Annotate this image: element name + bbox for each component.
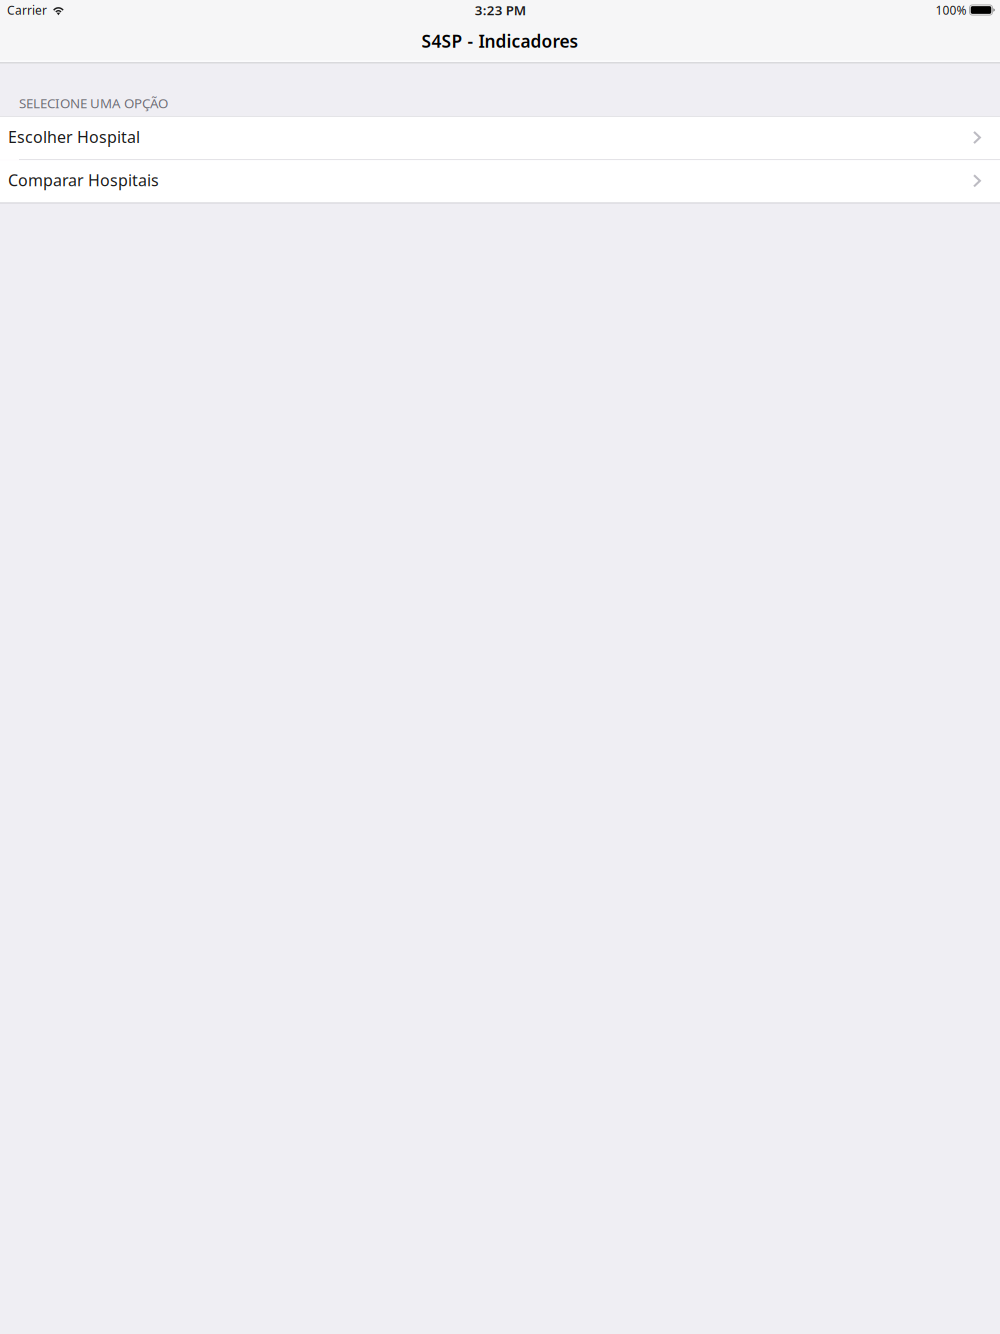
staticText: Carrier: [7, 2, 47, 18]
staticText: SELECIONE UMA OPÇÃO: [19, 94, 168, 112]
staticText: 3:23 PM: [475, 1, 526, 19]
staticText: 100%: [935, 2, 966, 18]
staticText: Comparar Hospitais: [8, 169, 159, 191]
staticText: S4SP - Indicadores: [421, 29, 578, 52]
button[interactable]: Escolher Hospital: [0, 117, 1000, 159]
button[interactable]: Comparar Hospitais: [0, 160, 1000, 202]
staticText: Escolher Hospital: [8, 126, 140, 147]
